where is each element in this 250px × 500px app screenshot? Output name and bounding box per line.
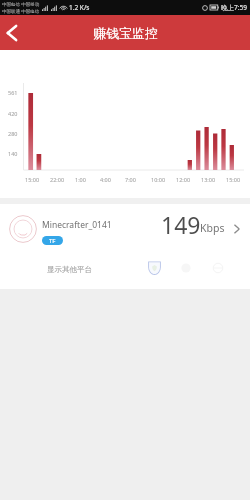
staticText: 晚上7:59 bbox=[221, 3, 247, 12]
staticText: 420 bbox=[8, 110, 18, 117]
staticText: 1:00 bbox=[75, 176, 86, 183]
staticText: 22:00 bbox=[50, 176, 65, 183]
staticText: 15:00 bbox=[25, 176, 40, 183]
button[interactable]: Globe bbox=[210, 260, 225, 275]
staticText: 561 bbox=[8, 89, 18, 96]
staticText: 140 bbox=[8, 150, 18, 157]
staticText: 中国电信 中国移动 bbox=[2, 1, 40, 7]
staticText: Kbps bbox=[200, 221, 225, 235]
staticText: 显示其他平台 bbox=[47, 265, 92, 274]
staticText: 13:00 bbox=[201, 176, 216, 183]
staticText: 12:00 bbox=[176, 176, 191, 183]
staticText: 1.2 K/s bbox=[69, 3, 90, 12]
staticText: Minecrafter_0141 bbox=[42, 219, 112, 231]
staticText: 赚钱宝监控 bbox=[93, 25, 158, 41]
button[interactable]: Minecrafter_0141 bbox=[0, 204, 250, 250]
staticText: TF bbox=[49, 237, 56, 245]
button[interactable]: Cloud bbox=[178, 260, 193, 275]
staticText: 280 bbox=[8, 130, 18, 137]
button[interactable]: Back bbox=[0, 15, 26, 50]
staticText: 15:00 bbox=[226, 176, 241, 183]
staticText: 7:00 bbox=[125, 176, 136, 183]
button[interactable]: Security shield bbox=[146, 259, 163, 276]
staticText: 中国联通 中国电信 bbox=[2, 8, 40, 14]
staticText: 149 bbox=[161, 209, 201, 240]
staticText: 4:00 bbox=[100, 176, 111, 183]
staticText: 10:00 bbox=[151, 176, 166, 183]
